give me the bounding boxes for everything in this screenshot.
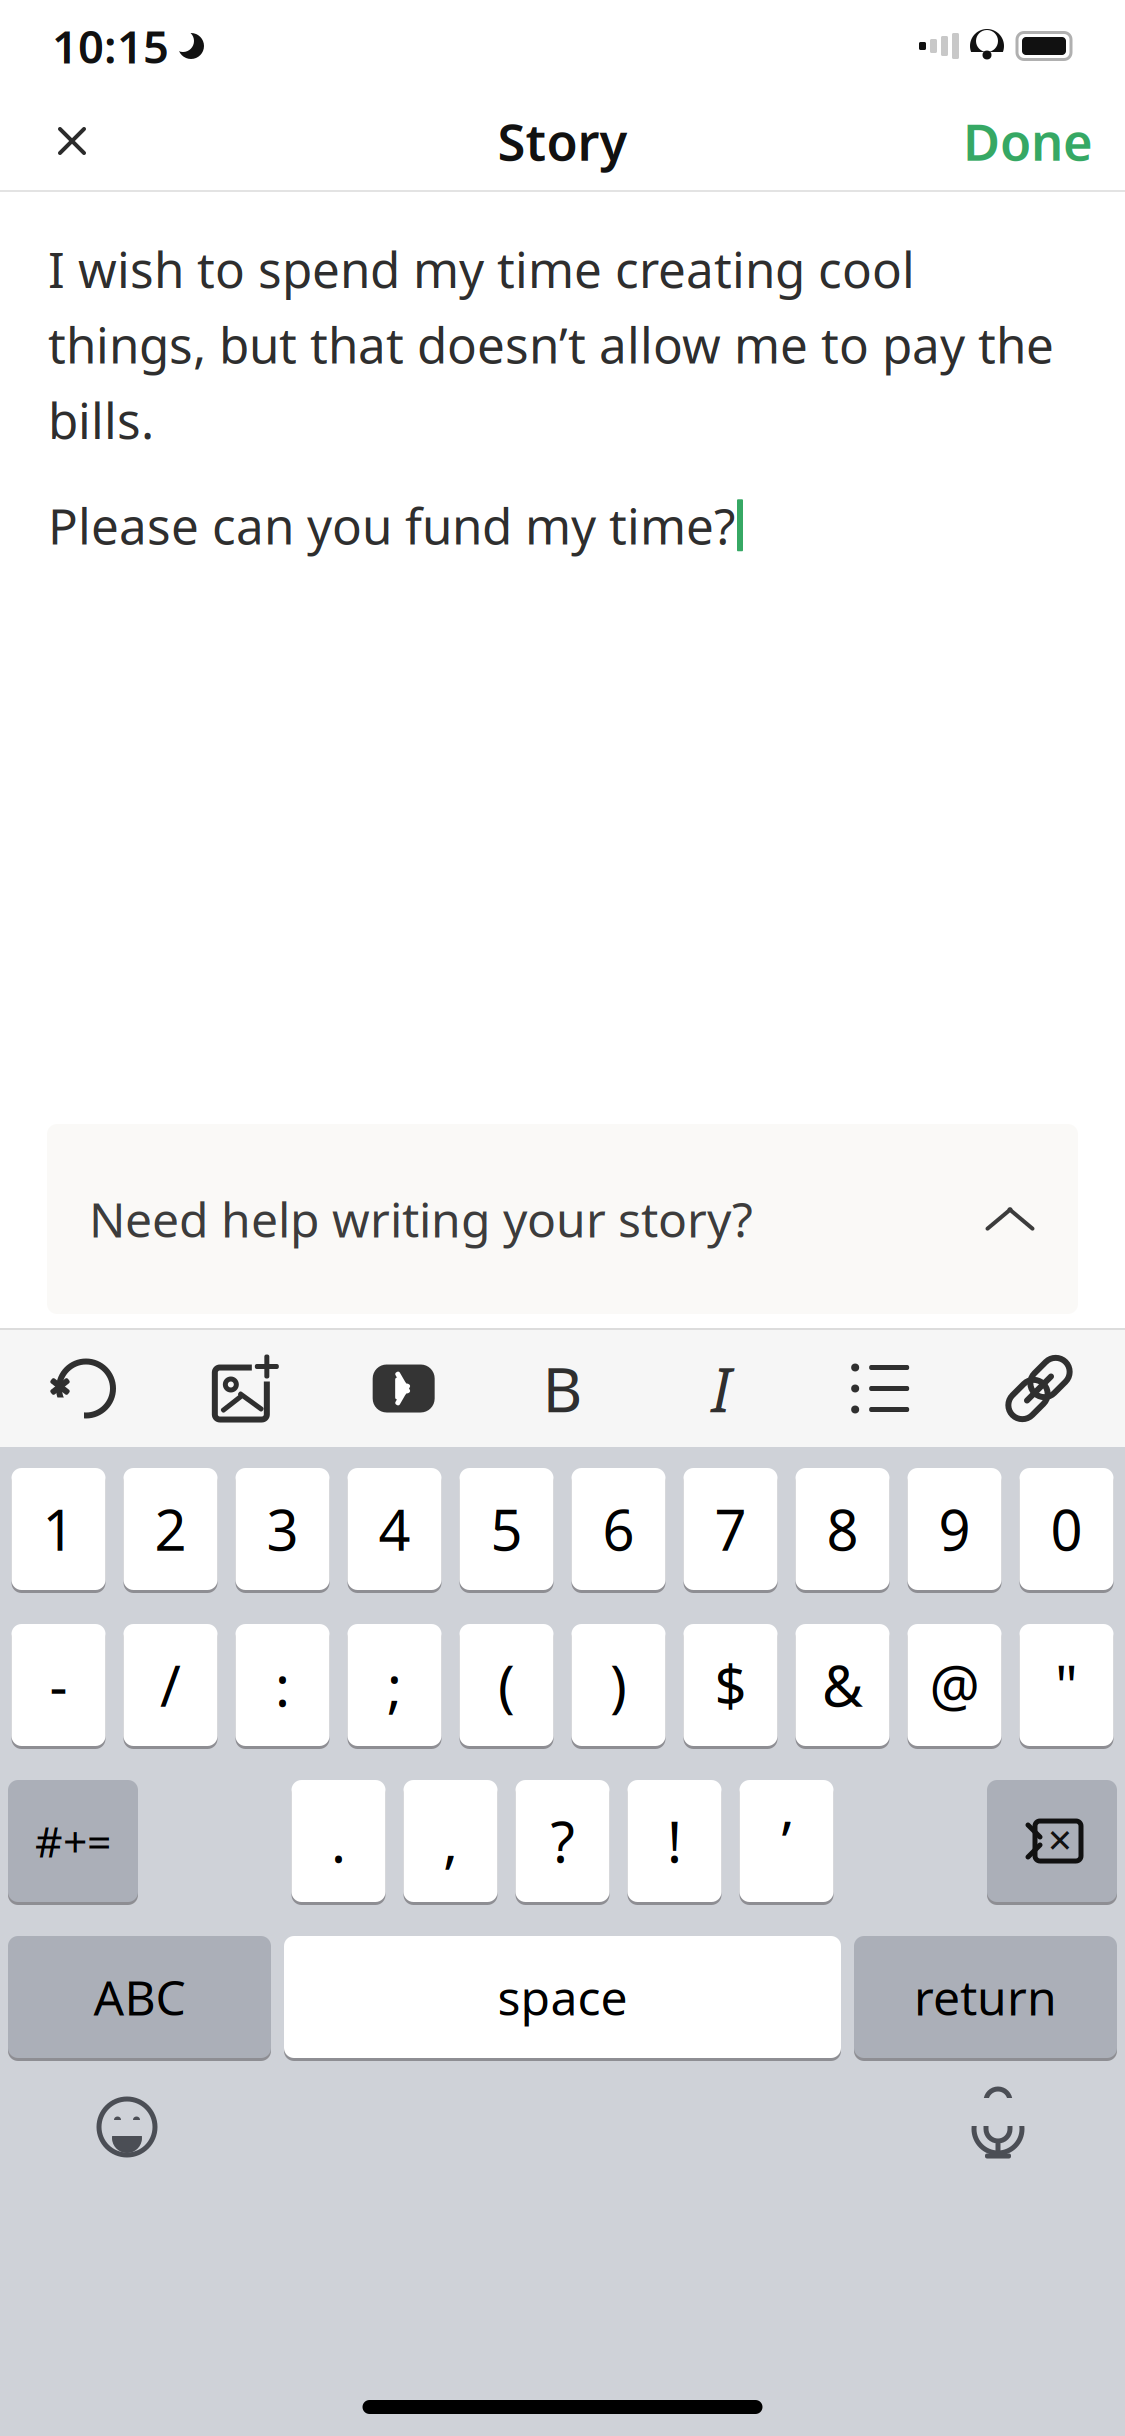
staticText: Story <box>497 107 627 175</box>
button[interactable]: Delete <box>987 1777 1117 1905</box>
staticText: #+= <box>35 1813 111 1869</box>
button[interactable]: / <box>123 1621 217 1749</box>
button[interactable]: Close <box>32 101 112 181</box>
button[interactable]: Bold <box>530 1356 594 1420</box>
staticText: / <box>160 1648 181 1722</box>
button[interactable]: Undo <box>54 1356 118 1420</box>
staticText: " <box>1055 1648 1078 1722</box>
button[interactable]: " <box>1019 1621 1113 1749</box>
button[interactable]: 9 <box>907 1465 1001 1593</box>
staticText: 2 <box>154 1492 186 1566</box>
button[interactable]: & <box>795 1621 889 1749</box>
staticText: Done <box>963 107 1093 175</box>
button[interactable]: 1 <box>11 1465 105 1593</box>
button[interactable]: Add photo <box>213 1356 277 1420</box>
staticText: & <box>822 1648 863 1722</box>
button[interactable]: 5 <box>459 1465 553 1593</box>
staticText: - <box>49 1648 67 1722</box>
button[interactable]: ? <box>515 1777 609 1905</box>
button[interactable]: 6 <box>571 1465 665 1593</box>
staticText: ✕ <box>1046 1823 1073 1859</box>
button[interactable]: Done <box>963 101 1093 181</box>
button[interactable]: Dictate <box>961 2085 1035 2169</box>
button[interactable]: - <box>11 1621 105 1749</box>
staticText: Please can you fund my time? <box>48 492 735 558</box>
staticText: ! <box>667 1804 682 1878</box>
button[interactable]: Need help writing your story? <box>47 1124 1078 1314</box>
staticText: ABC <box>93 1965 185 2029</box>
button[interactable]: ABC <box>8 1933 271 2061</box>
staticText: I wish to spend my time creating cool th… <box>48 236 1054 452</box>
button[interactable]: ! <box>627 1777 721 1905</box>
staticText: ) <box>610 1648 627 1722</box>
staticText: , <box>443 1804 458 1878</box>
staticText: 9 <box>938 1492 970 1566</box>
button[interactable]: : <box>235 1621 329 1749</box>
staticText: ( <box>498 1648 515 1722</box>
staticText: 7 <box>714 1492 746 1566</box>
button[interactable]: Bulleted list <box>848 1356 912 1420</box>
button[interactable]: Italic <box>689 1356 753 1420</box>
staticText: 6 <box>602 1492 634 1566</box>
staticText: ; <box>387 1648 402 1722</box>
staticText: 5 <box>490 1492 522 1566</box>
button[interactable]: . <box>291 1777 385 1905</box>
button[interactable]: return <box>854 1933 1117 2061</box>
button[interactable]: 8 <box>795 1465 889 1593</box>
button[interactable]: Insert link <box>1007 1356 1071 1420</box>
button[interactable]: ; <box>347 1621 441 1749</box>
staticText: return <box>914 1965 1057 2029</box>
button[interactable]: 3 <box>235 1465 329 1593</box>
staticText: : <box>275 1648 290 1722</box>
button[interactable]: ( <box>459 1621 553 1749</box>
staticText: 4 <box>378 1492 410 1566</box>
button[interactable]: ) <box>571 1621 665 1749</box>
staticText: 1 <box>42 1492 74 1566</box>
staticText: $ <box>714 1648 746 1722</box>
button[interactable]: , <box>403 1777 497 1905</box>
staticText: I <box>711 1348 731 1429</box>
staticText: space <box>497 1965 627 2029</box>
button[interactable]: 4 <box>347 1465 441 1593</box>
staticText: ? <box>550 1804 574 1878</box>
button[interactable]: #+= <box>8 1777 138 1905</box>
button[interactable]: Emoji <box>90 2090 164 2164</box>
button[interactable]: 2 <box>123 1465 217 1593</box>
button[interactable]: 0 <box>1019 1465 1113 1593</box>
button[interactable]: Add video <box>372 1356 436 1420</box>
button[interactable]: 7 <box>683 1465 777 1593</box>
staticText: Need help writing your story? <box>89 1187 753 1251</box>
staticText: B <box>542 1348 582 1429</box>
staticText: 8 <box>826 1492 858 1566</box>
staticText: . <box>331 1804 346 1878</box>
button[interactable]: space <box>284 1933 841 2061</box>
button[interactable]: $ <box>683 1621 777 1749</box>
button[interactable]: @ <box>907 1621 1001 1749</box>
staticText: 3 <box>266 1492 298 1566</box>
staticText: 10:15 <box>52 16 169 76</box>
staticText: 0 <box>1050 1492 1082 1566</box>
button[interactable]: ’ <box>739 1777 833 1905</box>
staticText: @ <box>929 1648 979 1722</box>
staticText: ’ <box>781 1804 791 1878</box>
